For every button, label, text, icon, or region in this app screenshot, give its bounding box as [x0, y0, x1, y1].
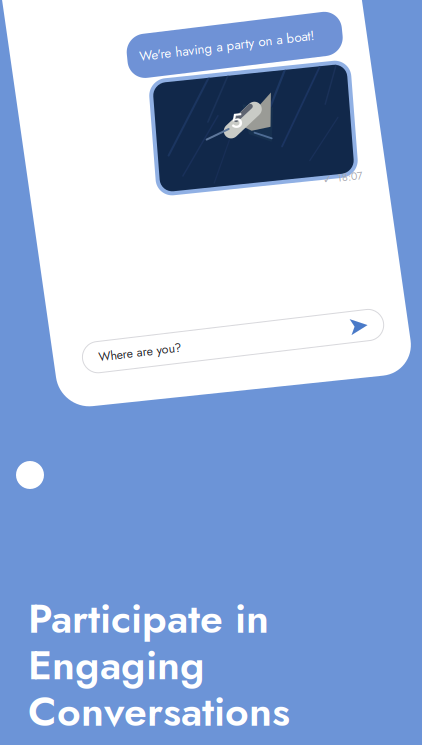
staticText: Where are you? — [97, 350, 180, 368]
staticText: Participate in — [28, 589, 269, 648]
staticText: 18:07 — [336, 172, 362, 187]
staticText: ✓ — [322, 173, 331, 186]
staticText: We're having a party on a boat! — [137, 48, 312, 68]
staticText: 5 — [227, 115, 239, 144]
staticText: Engaging — [28, 635, 205, 695]
staticText: Conversations — [28, 682, 290, 741]
